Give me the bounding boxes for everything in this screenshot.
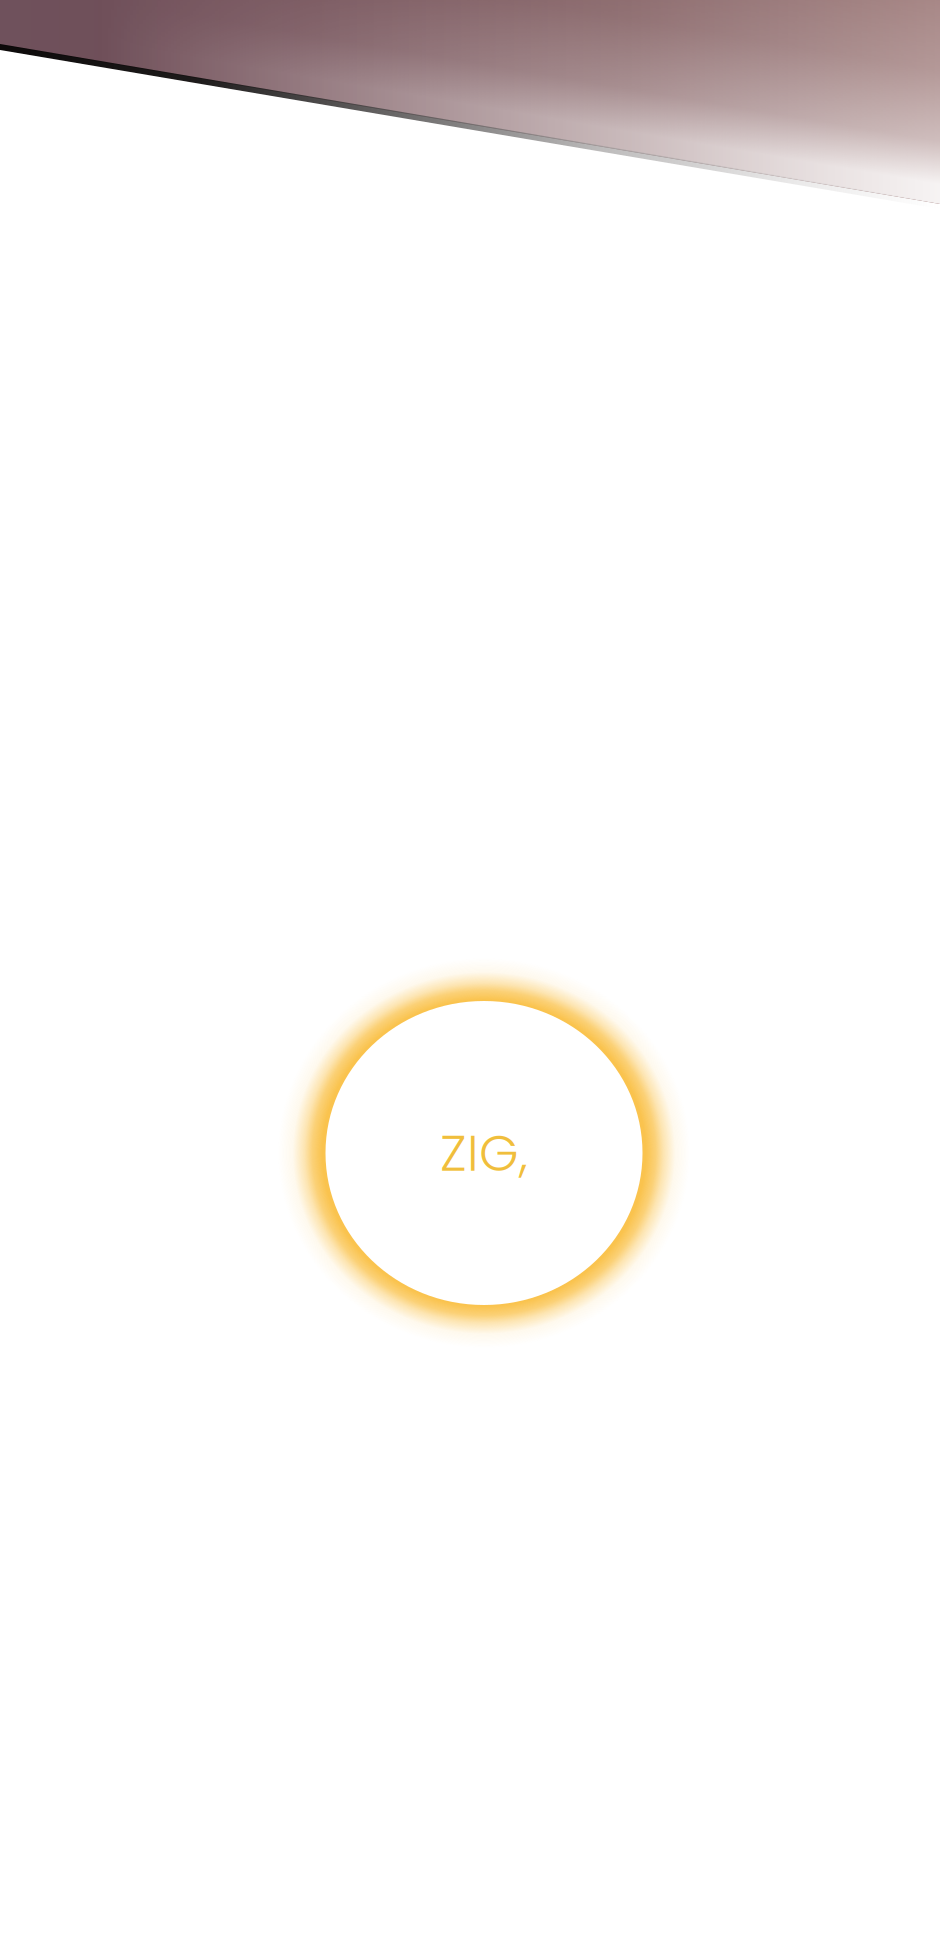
staticText: ZIG, [440,1117,528,1188]
button[interactable]: ZIG [278,957,690,1348]
